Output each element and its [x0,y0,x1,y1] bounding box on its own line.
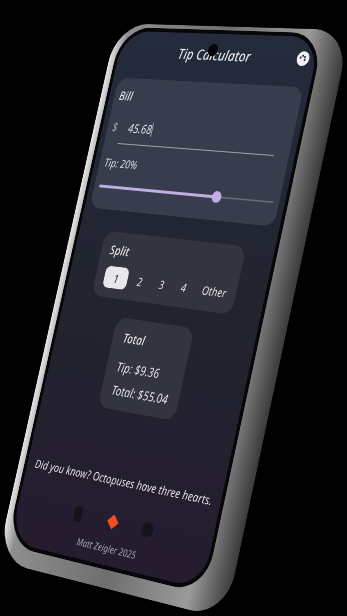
staticText: Total: $55.04 [110,381,170,408]
staticText: Tip Calculator [176,44,253,66]
button[interactable]: 3 [157,276,166,292]
button[interactable]: Other [200,282,228,301]
staticText: Matt Zeigler 2025 [12,519,208,579]
button[interactable]: Git [106,513,120,531]
staticText: Tip: $9.36 [115,358,162,382]
staticText: Total [121,329,147,349]
button[interactable]: LinkedIn [71,505,85,522]
button[interactable]: Theme [295,51,311,66]
staticText: $ [111,118,120,135]
staticText: 45.68 [126,119,154,138]
staticText: 1 [112,270,121,286]
staticText: Tip: 20% [103,154,140,172]
button[interactable]: GitHub [140,521,155,539]
button[interactable]: 4 [179,279,188,295]
staticText: Bill [118,87,135,104]
button[interactable]: 2 [136,273,144,289]
button[interactable]: 1 [102,265,130,290]
staticText: Did you know? Octopuses have three heart… [32,455,216,509]
staticText: Split [108,241,131,260]
